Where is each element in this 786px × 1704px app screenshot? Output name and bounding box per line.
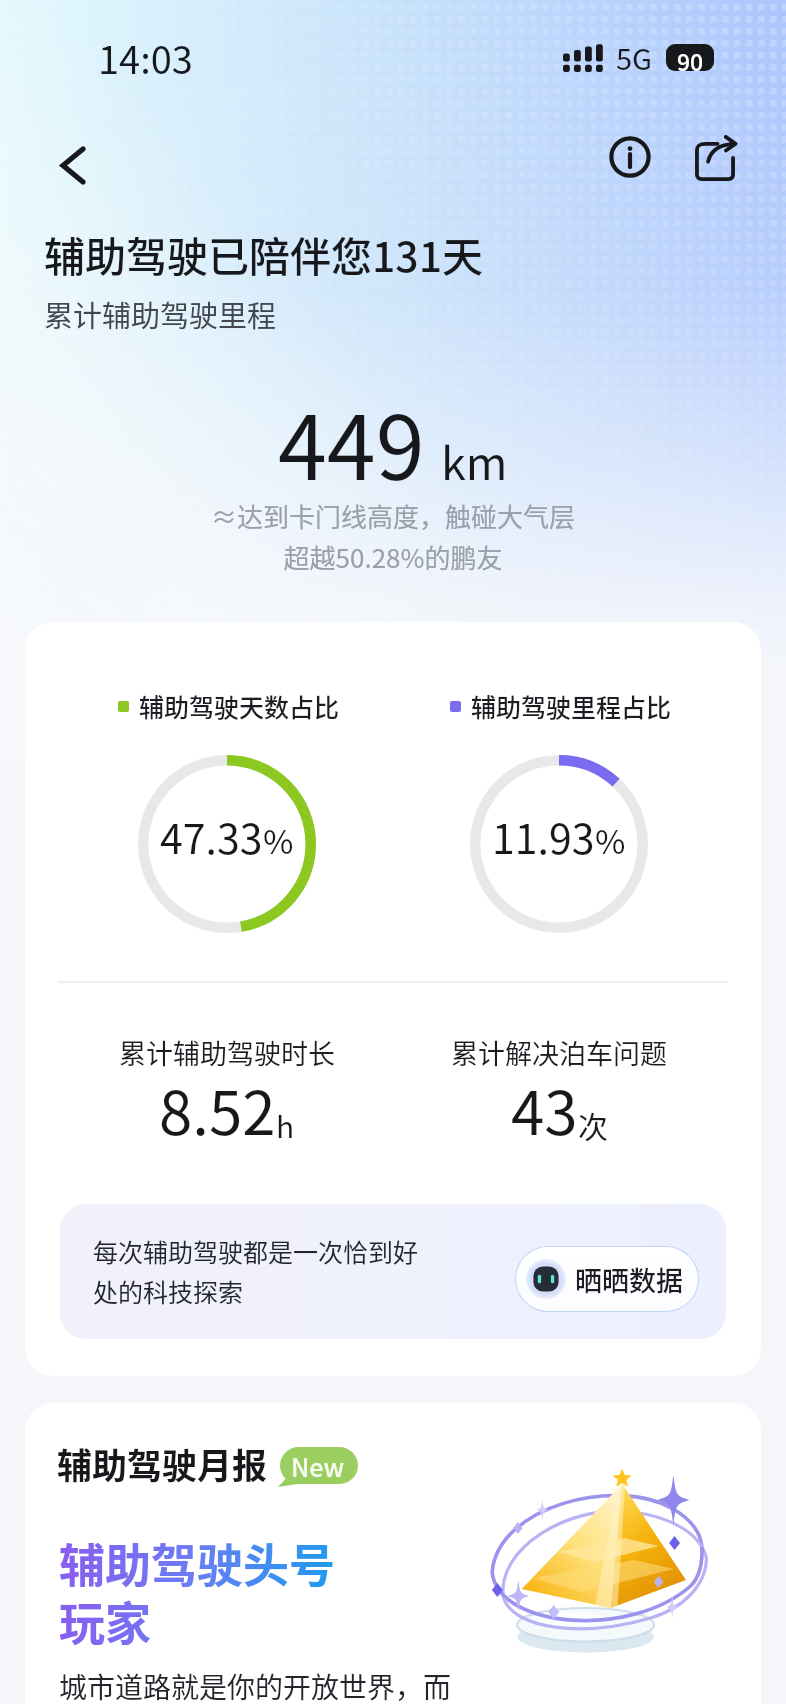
staticText: ≈达到卡门线高度，触碰大气层 — [0, 497, 786, 535]
staticText: h — [276, 1103, 295, 1146]
staticText: 47.33 — [160, 806, 263, 865]
staticText: 11.93 — [492, 806, 595, 865]
staticText: 辅助驾驶月报 — [57, 1438, 268, 1489]
staticText: 累计解决泊车问题 — [451, 1033, 667, 1072]
staticText: 累计辅助驾驶里程 — [44, 293, 277, 335]
staticText: 晒晒数据 — [575, 1260, 683, 1299]
staticText: 辅助驾驶头号 玩家 — [59, 1529, 335, 1653]
staticText: % — [595, 816, 626, 864]
staticText: 14:03 — [98, 30, 193, 85]
button[interactable]: Share — [693, 138, 737, 182]
staticText: % — [263, 816, 294, 864]
button[interactable]: Info — [608, 135, 652, 179]
staticText: 累计辅助驾驶时长 — [119, 1033, 335, 1072]
staticText: New — [291, 1448, 345, 1484]
staticText: 43 — [511, 1065, 578, 1152]
staticText: km — [441, 428, 508, 493]
staticText: 449 — [278, 378, 425, 505]
staticText: 90 — [677, 44, 704, 71]
button[interactable]: 晒晒数据 — [516, 1247, 698, 1311]
button[interactable]: Back — [42, 134, 104, 196]
staticText: 每次辅助驾驶都是一次恰到好 处的科技探索 — [93, 1233, 419, 1309]
staticText: 超越50.28%的鹏友 — [0, 538, 786, 576]
staticText: 辅助驾驶已陪伴您131天 — [44, 224, 484, 283]
staticText: 辅助驾驶天数占比 — [139, 688, 340, 724]
staticText: 辅助驾驶里程占比 — [471, 688, 672, 724]
staticText: 8.52 — [159, 1065, 276, 1152]
staticText: 次 — [578, 1103, 608, 1146]
staticText: 城市道路就是你的开放世界，而 — [59, 1666, 452, 1704]
staticText: 5G — [616, 36, 653, 78]
